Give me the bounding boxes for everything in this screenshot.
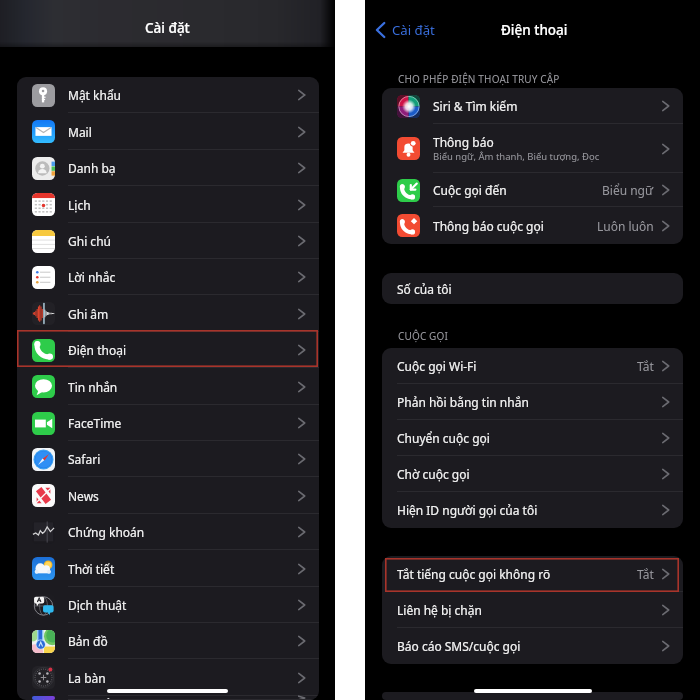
button[interactable]: Thông báo — [382, 124, 683, 173]
button[interactable]: Lời nhắc — [17, 259, 319, 295]
button[interactable]: Cuộc gọi Wi-Fi — [382, 348, 683, 384]
button[interactable]: Cuộc gọi đến — [382, 173, 683, 207]
staticText: Lịch — [68, 197, 91, 213]
button[interactable]: Cài đặt — [376, 21, 435, 39]
staticText: Mật khẩu — [68, 87, 122, 103]
staticText: Báo cáo SMS/cuộc gọi — [397, 638, 521, 654]
staticText: Số của tôi — [397, 281, 452, 297]
button[interactable]: Ghi âm — [17, 295, 319, 332]
staticText: Chờ cuộc gọi — [397, 466, 470, 482]
button[interactable]: Phím tắt — [17, 696, 319, 700]
staticText: Tắt — [637, 566, 654, 582]
staticText: Phím tắt — [68, 696, 116, 700]
button[interactable]: Danh bạ — [17, 150, 319, 186]
button[interactable]: Mail — [17, 113, 319, 150]
button[interactable]: Điện thoại — [17, 332, 319, 368]
staticText: Phản hồi bằng tin nhắn — [397, 394, 529, 410]
staticText: Điện thoại — [501, 21, 568, 39]
staticText: FaceTime — [68, 415, 122, 431]
staticText: La bàn — [68, 670, 106, 686]
button[interactable]: Mật khẩu — [17, 77, 319, 113]
staticText: Liên hệ bị chặn — [397, 602, 482, 618]
button[interactable]: Tin nhắn — [17, 368, 319, 405]
staticText: Thời tiết — [68, 561, 115, 577]
button[interactable]: Tắt tiếng cuộc gọi không rõ — [382, 556, 683, 592]
button[interactable]: FaceTime — [17, 405, 319, 441]
button[interactable]: Chứng khoán — [17, 514, 319, 550]
button[interactable]: Phản hồi bằng tin nhắn — [382, 384, 683, 420]
staticText: Thông báo — [433, 134, 494, 150]
staticText: Biểu ngữ, Âm thanh, Biểu tượng, Đọc — [433, 150, 600, 163]
button[interactable]: Số của tôi — [382, 273, 683, 304]
staticText: CHO PHÉP ĐIỆN THOẠI TRUY CẬP — [398, 72, 560, 86]
button[interactable]: La bàn — [17, 659, 319, 696]
staticText: Biểu ngữ — [602, 182, 654, 198]
staticText: Hiện ID người gọi của tôi — [397, 502, 538, 518]
staticText: Lời nhắc — [68, 269, 116, 285]
staticText: Cài đặt — [145, 19, 190, 37]
staticText: Siri & Tìm kiếm — [433, 98, 518, 114]
staticText: Luôn luôn — [597, 218, 654, 234]
button[interactable]: Siri & Tìm kiếm — [382, 88, 683, 124]
staticText: Tắt tiếng cuộc gọi không rõ — [397, 566, 551, 582]
staticText: Cuộc gọi đến — [433, 182, 507, 198]
button[interactable]: Hiện ID người gọi của tôi — [382, 492, 683, 528]
button[interactable]: Thông báo cuộc gọi — [382, 207, 683, 244]
button[interactable]: Dịch thuật — [17, 587, 319, 623]
staticText: CUỘC GỌI — [398, 329, 449, 343]
staticText: Ghi chú — [68, 233, 111, 249]
staticText: Cài đặt — [392, 21, 435, 39]
button[interactable]: Ghi chú — [17, 223, 319, 259]
button[interactable] — [382, 692, 683, 700]
button[interactable]: Thời tiết — [17, 550, 319, 587]
staticText: Tắt — [637, 358, 654, 374]
staticText: Dịch thuật — [68, 597, 127, 613]
staticText: Cuộc gọi Wi-Fi — [397, 358, 477, 374]
button[interactable]: Lịch — [17, 186, 319, 223]
staticText: Mail — [68, 124, 92, 140]
staticText: Bản đồ — [68, 633, 108, 649]
button[interactable]: News — [17, 477, 319, 514]
button[interactable]: Chờ cuộc gọi — [382, 456, 683, 492]
button[interactable]: Báo cáo SMS/cuộc gọi — [382, 628, 683, 664]
staticText: Danh bạ — [68, 160, 116, 176]
staticText: Thông báo cuộc gọi — [433, 218, 544, 234]
staticText: Chuyển cuộc gọi — [397, 430, 490, 446]
staticText: Tin nhắn — [68, 379, 118, 395]
staticText: Ghi âm — [68, 306, 109, 322]
button[interactable]: Liên hệ bị chặn — [382, 592, 683, 628]
staticText: Safari — [68, 451, 101, 467]
staticText: Chứng khoán — [68, 524, 145, 540]
button[interactable]: Bản đồ — [17, 623, 319, 659]
button[interactable]: Chuyển cuộc gọi — [382, 420, 683, 456]
staticText: News — [68, 488, 99, 504]
button[interactable]: Safari — [17, 441, 319, 477]
staticText: Điện thoại — [68, 342, 126, 358]
